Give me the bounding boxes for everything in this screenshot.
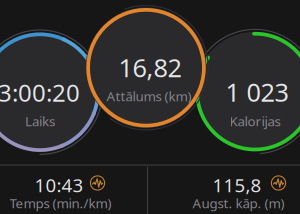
staticText: 1 023	[225, 75, 288, 109]
button[interactable]: 3:00:20	[0, 0, 300, 214]
staticText: 115,8	[212, 173, 261, 197]
staticText: 16,82	[118, 51, 181, 84]
staticText: Temps (min./km)	[9, 194, 111, 212]
staticText: 3:00:20	[0, 76, 80, 108]
button[interactable]: 10:43	[0, 0, 300, 214]
staticText: Kalorijas	[229, 112, 280, 130]
button[interactable]: 16,82	[0, 0, 300, 214]
staticText: Attālums (km)	[106, 87, 191, 105]
button[interactable]: 115,8	[0, 0, 300, 214]
staticText: Augst. kāp. (m)	[192, 194, 284, 212]
staticText: 10:43	[34, 173, 83, 197]
button[interactable]: 1 023	[0, 0, 300, 214]
staticText: Laiks	[25, 112, 55, 130]
